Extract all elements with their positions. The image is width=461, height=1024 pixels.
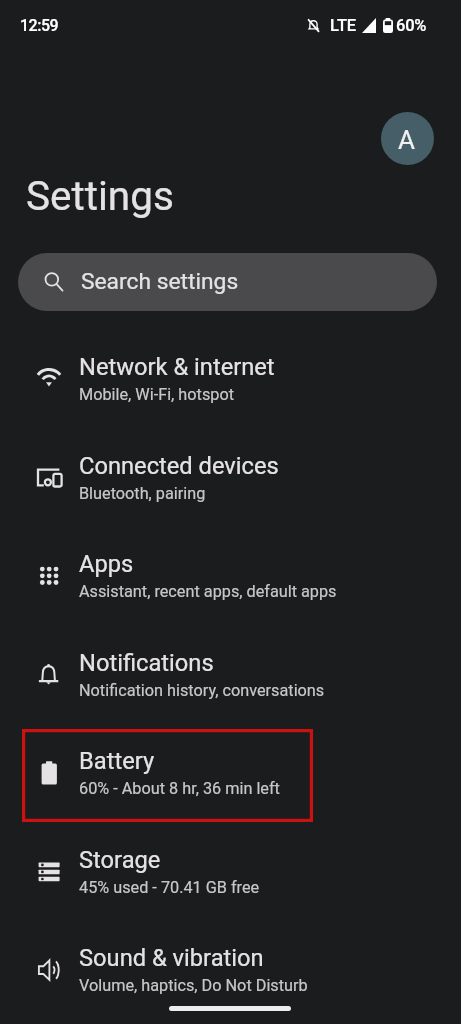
- staticText: Storage: [79, 846, 161, 874]
- staticText: Notification history, conversations: [79, 681, 325, 700]
- button[interactable]: Notifications: [0, 635, 461, 734]
- staticText: 60%: [396, 16, 427, 35]
- staticText: Bluetooth, pairing: [79, 484, 206, 503]
- button[interactable]: Apps: [0, 536, 461, 635]
- button[interactable]: Connected devices: [0, 438, 461, 537]
- staticText: 12:59: [20, 16, 59, 35]
- button[interactable]: Battery: [0, 733, 461, 832]
- button[interactable]: Search settings: [18, 253, 437, 311]
- staticText: 60% - About 8 hr, 36 min left: [79, 779, 280, 798]
- staticText: Apps: [79, 550, 134, 578]
- staticText: Mobile, Wi-Fi, hotspot: [79, 385, 234, 404]
- staticText: Network & internet: [79, 353, 275, 381]
- button[interactable]: Network & internet: [0, 339, 461, 438]
- staticText: Battery: [79, 747, 155, 775]
- staticText: LTE: [330, 16, 356, 35]
- staticText: Settings: [26, 172, 174, 219]
- button[interactable]: Storage: [0, 832, 461, 931]
- staticText: Sound & vibration: [79, 944, 264, 972]
- staticText: Notifications: [79, 649, 214, 677]
- staticText: 45% used - 70.41 GB free: [79, 878, 260, 897]
- staticText: Connected devices: [79, 452, 279, 480]
- button[interactable]: Sound & vibration: [0, 930, 461, 1024]
- button[interactable]: Account: [381, 112, 434, 165]
- staticText: Assistant, recent apps, default apps: [79, 582, 337, 601]
- staticText: Volume, haptics, Do Not Disturb: [79, 976, 308, 995]
- staticText: A: [398, 125, 415, 155]
- staticText: Search settings: [81, 268, 239, 295]
